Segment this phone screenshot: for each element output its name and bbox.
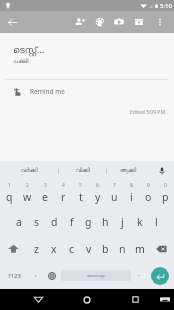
button[interactable]: 8 <box>123 181 140 208</box>
staticText: d <box>51 215 58 229</box>
button[interactable]: Back <box>25 289 51 310</box>
button[interactable]: h <box>97 208 114 235</box>
button[interactable]: 4 <box>54 181 72 208</box>
staticText: 1 <box>8 182 11 189</box>
button[interactable]: f <box>63 208 80 235</box>
staticText: v <box>86 242 92 256</box>
button[interactable]: z <box>27 235 45 262</box>
staticText: 7 <box>113 182 116 189</box>
staticText: t <box>79 190 83 204</box>
staticText: . <box>138 269 140 279</box>
button[interactable]: 1 <box>0 181 18 208</box>
staticText: 3 <box>44 182 47 189</box>
button[interactable]: 0 <box>157 181 174 208</box>
button[interactable]: v <box>80 235 97 262</box>
staticText: y <box>95 190 101 204</box>
button[interactable]: b <box>97 235 114 262</box>
button[interactable]: 2 <box>18 181 36 208</box>
staticText: Edited 5:09 PM <box>130 109 165 116</box>
staticText: 0 <box>164 182 167 189</box>
staticText: g <box>85 215 92 229</box>
button[interactable]: വർക്കി <box>0 161 58 181</box>
staticText: 5:10 <box>160 2 172 10</box>
button[interactable]: Change keyboard language <box>43 262 60 289</box>
staticText: o <box>145 190 152 204</box>
staticText: x <box>51 242 57 256</box>
button[interactable]: 9 <box>140 181 157 208</box>
button[interactable]: 7 <box>106 181 123 208</box>
staticText: l <box>155 215 158 229</box>
staticText: z <box>34 242 39 256</box>
button[interactable]: Collaborator <box>70 11 90 33</box>
button[interactable]: n <box>114 235 131 262</box>
staticText: q <box>6 190 13 204</box>
button[interactable]: Shift <box>0 235 27 262</box>
staticText: b <box>102 242 109 256</box>
button[interactable]: Remind me <box>0 82 174 100</box>
staticText: ആക്കി <box>120 168 137 174</box>
button[interactable]: Recent apps <box>122 289 148 310</box>
staticText: 2 <box>26 182 29 189</box>
staticText: 5 <box>79 182 82 189</box>
staticText: s <box>34 215 40 229</box>
button[interactable]: More options <box>150 11 170 33</box>
button[interactable]: 5 <box>72 181 89 208</box>
button[interactable]: ആക്കി <box>107 161 150 181</box>
staticText: 6 <box>96 182 99 189</box>
staticText: , <box>35 269 37 279</box>
button[interactable]: Hide keyboard <box>154 289 174 310</box>
button[interactable]: x <box>45 235 63 262</box>
button[interactable]: j <box>114 208 131 235</box>
button[interactable]: k <box>131 208 148 235</box>
button[interactable]: 6 <box>89 181 106 208</box>
staticText: വിക്കി <box>76 168 90 174</box>
staticText: j <box>121 215 124 229</box>
staticText: n <box>119 242 126 256</box>
button[interactable]: , <box>28 262 43 289</box>
button[interactable]: Navigate up <box>1 11 23 33</box>
staticText: 4 <box>62 182 65 189</box>
button[interactable]: 3 <box>36 181 54 208</box>
button[interactable]: . <box>132 262 146 289</box>
staticText: e <box>42 190 48 204</box>
button[interactable]: m <box>131 235 148 262</box>
staticText: മലയാളം <box>87 273 106 278</box>
staticText: 8 <box>130 182 133 189</box>
staticText: r <box>61 190 66 204</box>
staticText: u <box>111 190 118 204</box>
button[interactable]: ?123 <box>0 262 28 289</box>
staticText: f <box>70 215 74 229</box>
staticText: വർക്കി <box>21 168 38 174</box>
staticText: ടെസ്റ്റ്... <box>13 43 45 55</box>
staticText: m <box>135 242 145 256</box>
staticText: 9 <box>147 182 150 189</box>
staticText: i <box>130 190 133 204</box>
staticText: c <box>69 242 75 256</box>
button[interactable]: d <box>46 208 63 235</box>
staticText: പക്ഷി <box>13 58 29 64</box>
button[interactable]: c <box>63 235 80 262</box>
button[interactable]: l <box>148 208 165 235</box>
button[interactable]: g <box>80 208 97 235</box>
staticText: ?123 <box>8 272 21 280</box>
staticText: w <box>23 190 32 204</box>
staticText: h <box>102 215 109 229</box>
staticText: Remind me <box>30 87 65 96</box>
button[interactable]: Home <box>74 289 100 310</box>
staticText: p <box>162 190 169 204</box>
button[interactable]: Change colour <box>90 11 110 33</box>
button[interactable]: Space <box>61 270 131 281</box>
button[interactable]: a <box>10 208 28 235</box>
button[interactable]: Add image <box>109 11 129 33</box>
button[interactable]: s <box>28 208 46 235</box>
button[interactable]: Archive <box>129 11 149 33</box>
staticText: k <box>137 215 143 229</box>
staticText: a <box>16 215 22 229</box>
button[interactable]: Enter <box>146 262 174 289</box>
button[interactable]: Voice input <box>150 161 174 181</box>
button[interactable]: വിക്കി <box>59 161 106 181</box>
button[interactable]: Delete <box>148 235 174 262</box>
